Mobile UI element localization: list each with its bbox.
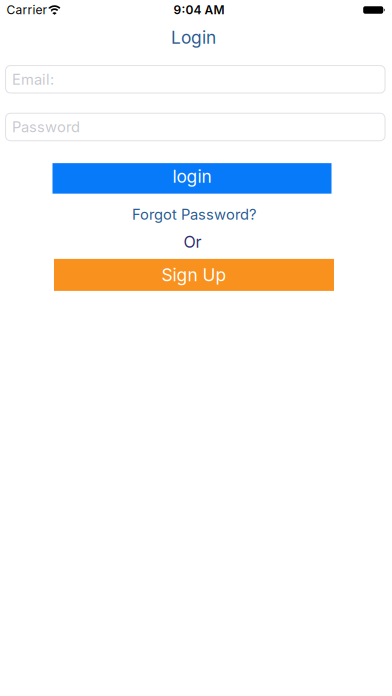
staticText: Password [12,118,80,136]
staticText: login [172,166,211,187]
button[interactable]: Email: [5,65,386,93]
staticText: Sign Up [161,265,226,285]
button[interactable]: login [52,163,331,194]
button[interactable]: Forgot Password? [132,206,256,223]
staticText: Or [183,233,201,251]
button[interactable]: Sign Up [54,259,334,291]
staticText: Forgot Password? [132,206,256,223]
staticText: Login [171,27,216,48]
staticText: Carrier [6,3,47,17]
staticText: Email: [12,71,54,88]
button[interactable]: Password [5,113,386,141]
staticText: 9:04 AM [173,3,224,17]
